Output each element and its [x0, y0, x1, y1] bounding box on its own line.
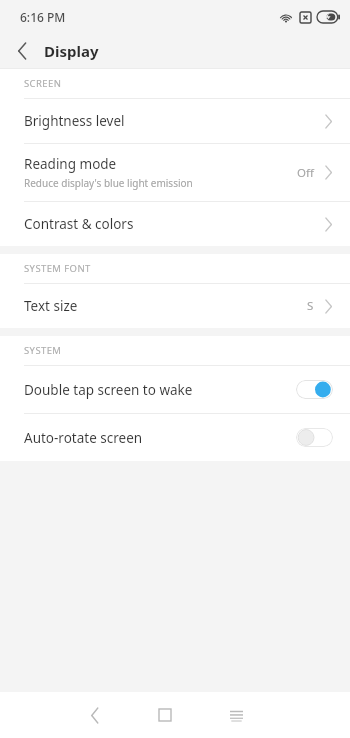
staticText: Display [44, 41, 99, 61]
staticText: Reading mode [24, 155, 117, 173]
button[interactable]: Back [0, 34, 44, 68]
button[interactable]: Off [296, 428, 333, 447]
button[interactable]: On [296, 380, 333, 399]
button[interactable]: Text size [0, 284, 350, 328]
button[interactable]: Brightness level [0, 99, 350, 143]
button[interactable]: Reading mode [0, 144, 350, 201]
staticText: SYSTEM [24, 344, 62, 357]
button[interactable]: Recents [211, 692, 261, 738]
staticText: Contrast & colors [24, 215, 134, 233]
staticText: Brightness level [24, 112, 125, 130]
staticText: Double tap screen to wake [24, 381, 296, 399]
button[interactable]: Auto-rotate screen [0, 414, 350, 461]
staticText: S [307, 298, 314, 314]
staticText: SCREEN [24, 77, 62, 90]
staticText: Auto-rotate screen [24, 429, 296, 447]
staticText: Reduce display's blue light emission [24, 176, 193, 190]
button[interactable]: Back [70, 692, 120, 738]
staticText: Off [297, 165, 314, 181]
button[interactable]: Home [140, 692, 190, 738]
staticText: Text size [24, 297, 78, 315]
staticText: 6:16 PM [20, 9, 66, 25]
button[interactable]: Double tap screen to wake [0, 366, 350, 413]
button[interactable]: Contrast & colors [0, 202, 350, 246]
staticText: SYSTEM FONT [24, 262, 91, 275]
